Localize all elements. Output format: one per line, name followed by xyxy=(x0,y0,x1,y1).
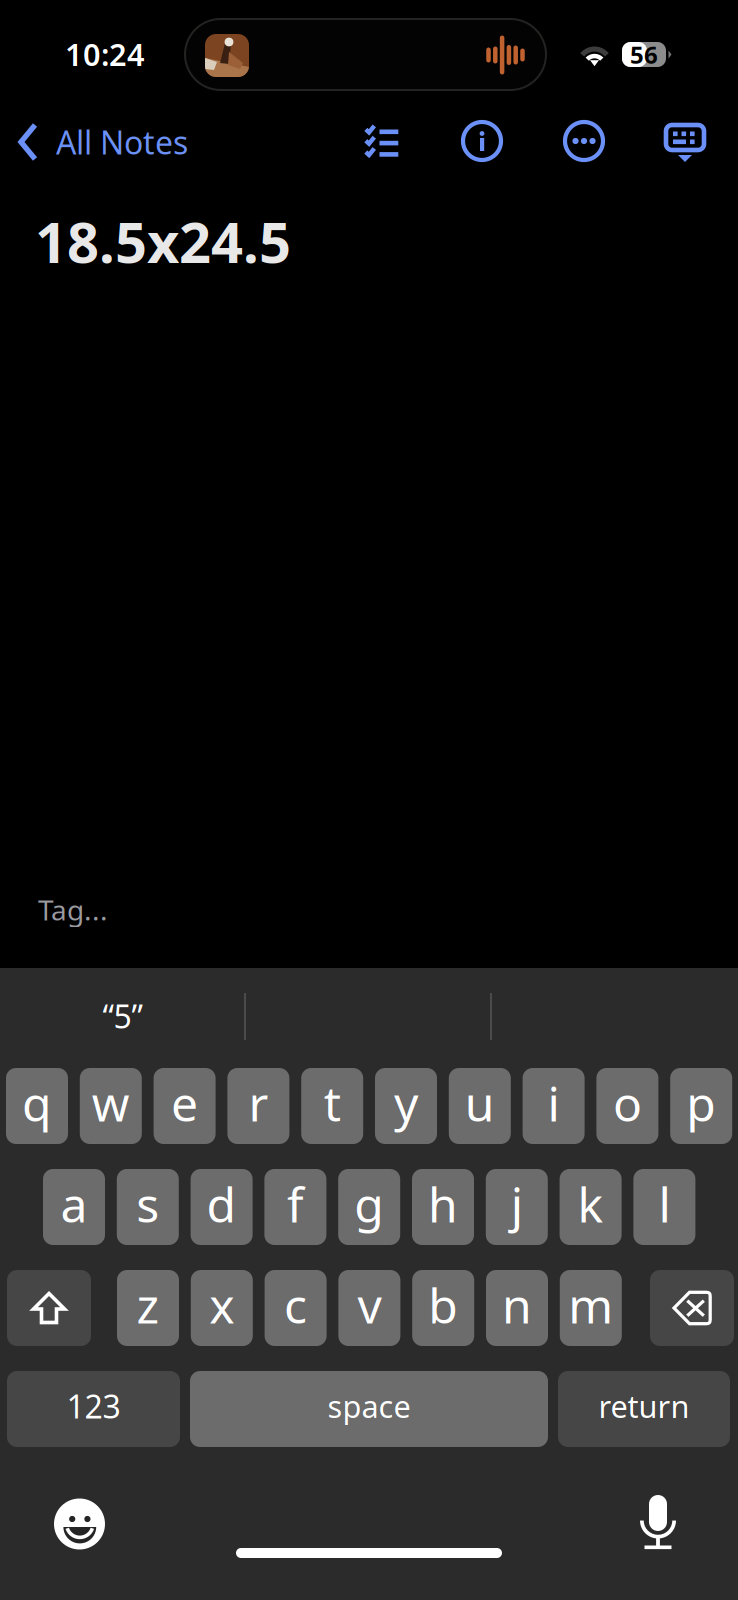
staticText: y xyxy=(394,1071,418,1135)
button[interactable]: d xyxy=(191,1169,253,1245)
button[interactable]: o xyxy=(596,1068,658,1144)
staticText: i xyxy=(548,1071,560,1135)
button[interactable]: f xyxy=(264,1169,326,1245)
button[interactable]: k xyxy=(560,1169,622,1245)
button[interactable]: Checklist xyxy=(348,108,414,174)
staticText: o xyxy=(613,1071,642,1135)
staticText: h xyxy=(428,1172,458,1236)
staticText: v xyxy=(357,1273,381,1337)
button[interactable]: j xyxy=(486,1169,548,1245)
staticText: s xyxy=(136,1172,159,1236)
button[interactable]: Info xyxy=(449,108,515,174)
staticText: q xyxy=(22,1071,52,1135)
button[interactable]: All Notes xyxy=(3,110,202,174)
button[interactable]: i xyxy=(523,1068,585,1144)
staticText: r xyxy=(248,1071,268,1135)
staticText: “5” xyxy=(102,995,142,1037)
button[interactable]: m xyxy=(560,1270,622,1346)
button[interactable]: Emoji keyboard xyxy=(51,1496,107,1552)
button[interactable]: a xyxy=(43,1169,105,1245)
button[interactable]: e xyxy=(154,1068,216,1144)
staticText: All Notes xyxy=(56,121,188,163)
staticText: g xyxy=(354,1172,384,1236)
staticText: k xyxy=(578,1172,604,1236)
staticText: b xyxy=(428,1273,458,1337)
staticText: m xyxy=(568,1273,613,1337)
staticText: p xyxy=(686,1071,716,1135)
staticText: space xyxy=(327,1386,410,1426)
staticText: t xyxy=(324,1071,341,1135)
button[interactable]: h xyxy=(412,1169,474,1245)
staticText: u xyxy=(465,1071,495,1135)
button[interactable]: q xyxy=(6,1068,68,1144)
button[interactable]: v xyxy=(338,1270,400,1346)
button[interactable]: c xyxy=(265,1270,327,1346)
button[interactable]: w xyxy=(80,1068,142,1144)
staticText: 18.5x24.5 xyxy=(35,204,291,278)
button[interactable]: l xyxy=(633,1169,695,1245)
staticText: 56 xyxy=(630,39,658,70)
button[interactable]: 123 xyxy=(7,1371,180,1447)
staticText: x xyxy=(209,1273,234,1337)
button[interactable]: Delete xyxy=(650,1270,734,1346)
staticText: 10:24 xyxy=(65,34,145,74)
button[interactable]: u xyxy=(449,1068,511,1144)
button[interactable]: r xyxy=(227,1068,289,1144)
staticText: c xyxy=(284,1273,307,1337)
staticText: 123 xyxy=(66,1385,120,1427)
staticText: f xyxy=(287,1172,304,1236)
button[interactable]: n xyxy=(486,1270,548,1346)
button[interactable]: s xyxy=(117,1169,179,1245)
button[interactable]: p xyxy=(670,1068,732,1144)
button[interactable]: z xyxy=(117,1270,179,1346)
button[interactable]: t xyxy=(301,1068,363,1144)
staticText: a xyxy=(60,1172,87,1236)
button[interactable]: Hide Keyboard xyxy=(652,108,718,174)
button[interactable]: space xyxy=(190,1371,548,1447)
button[interactable]: Shift xyxy=(7,1270,91,1346)
button[interactable]: return xyxy=(558,1371,730,1447)
staticText: return xyxy=(598,1386,689,1426)
staticText: j xyxy=(511,1172,523,1236)
staticText: e xyxy=(171,1071,198,1135)
button[interactable]: Dictation xyxy=(639,1495,677,1551)
button[interactable]: y xyxy=(375,1068,437,1144)
button[interactable]: x xyxy=(191,1270,253,1346)
staticText: w xyxy=(92,1071,130,1135)
staticText: n xyxy=(502,1273,532,1337)
staticText: d xyxy=(207,1172,237,1236)
staticText: z xyxy=(136,1273,159,1337)
staticText: Tag... xyxy=(38,891,108,928)
staticText: l xyxy=(658,1172,670,1236)
button[interactable]: g xyxy=(338,1169,400,1245)
button[interactable]: More xyxy=(551,108,617,174)
button[interactable]: b xyxy=(412,1270,474,1346)
